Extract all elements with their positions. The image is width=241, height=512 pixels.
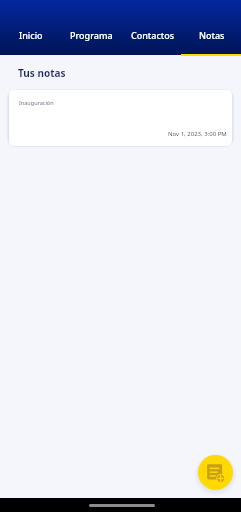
- staticText: Nov 1, 2023, 3:00 PM: [168, 130, 227, 138]
- button[interactable]: Create note: [198, 455, 233, 490]
- staticText: Programa: [70, 29, 113, 41]
- button[interactable]: Notas: [183, 15, 241, 55]
- staticText: Tus notas: [18, 66, 66, 80]
- button[interactable]: Contactos: [122, 15, 183, 55]
- staticText: Notas: [199, 29, 225, 41]
- staticText: Inauguración: [19, 99, 54, 106]
- staticText: Inicio: [19, 29, 43, 41]
- button[interactable]: Programa: [61, 15, 122, 55]
- button[interactable]: Inauguración: [9, 90, 232, 146]
- staticText: Contactos: [131, 29, 175, 41]
- button[interactable]: Inicio: [0, 15, 61, 55]
